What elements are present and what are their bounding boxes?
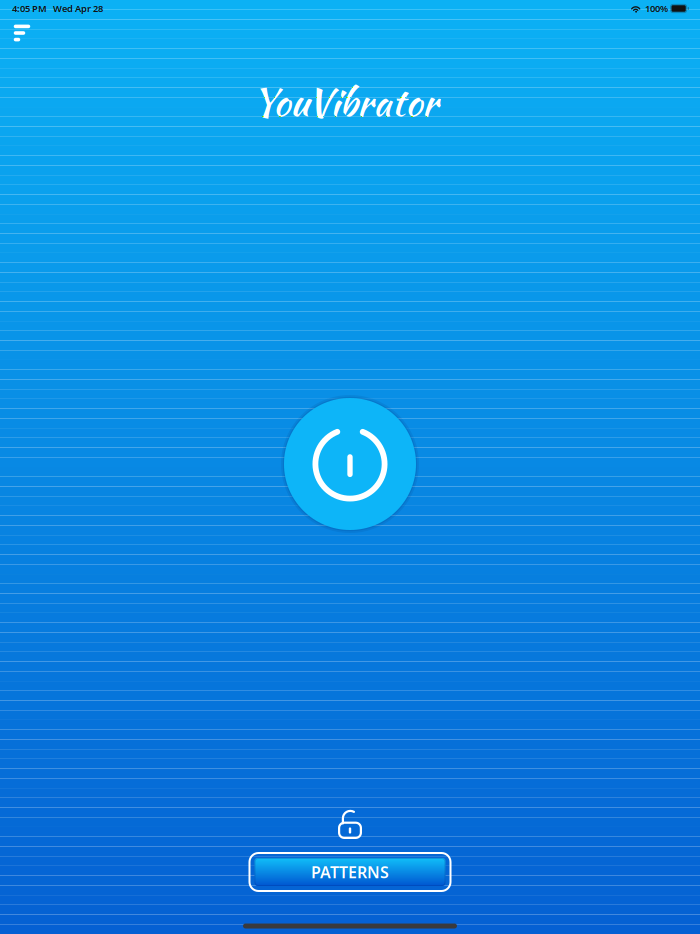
- staticText: 100%: [645, 2, 668, 15]
- button[interactable]: Power: [280, 394, 420, 534]
- button[interactable]: Menu: [4, 15, 40, 51]
- staticText: Wed Apr 28: [53, 2, 103, 15]
- staticText: 4:05 PM: [12, 2, 47, 15]
- button[interactable]: PATTERNS: [248, 852, 451, 892]
- staticText: YouVibrator: [252, 74, 438, 130]
- button[interactable]: Unlock: [332, 799, 372, 845]
- staticText: PATTERNS: [311, 861, 389, 883]
